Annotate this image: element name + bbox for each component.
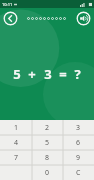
button[interactable]: 7 (0, 150, 32, 165)
staticText: 7 (14, 153, 19, 163)
staticText: 5 (45, 138, 50, 148)
staticText: 9 (76, 153, 81, 163)
button[interactable]: 1 (0, 120, 32, 135)
staticText: 2 (45, 123, 50, 133)
button[interactable]: 3 (63, 120, 94, 135)
button[interactable]: 4 (0, 135, 32, 150)
staticText: 0 (45, 168, 50, 178)
button[interactable]: 2 (32, 120, 63, 135)
staticText: 3 (76, 123, 81, 133)
staticText: 6 (76, 138, 81, 148)
staticText: + (28, 65, 36, 83)
staticText: 1 (14, 123, 19, 133)
button[interactable]: Back (3, 11, 18, 26)
button[interactable]: 9 (63, 150, 94, 165)
staticText: 5 (13, 65, 21, 83)
button[interactable]: 8 (32, 150, 63, 165)
staticText: 8 (45, 153, 50, 163)
staticText: 4 (14, 138, 19, 148)
button[interactable]: 0 (32, 165, 63, 180)
button[interactable]: C (63, 165, 94, 180)
button[interactable]: Sound (76, 11, 91, 26)
button[interactable]: 6 (63, 135, 94, 150)
staticText: = (59, 65, 67, 83)
staticText: C (76, 168, 81, 178)
staticText: 3 (44, 65, 52, 83)
staticText: 10:11 (2, 2, 13, 7)
staticText: ? (74, 65, 81, 83)
button[interactable]: 5 (32, 135, 63, 150)
